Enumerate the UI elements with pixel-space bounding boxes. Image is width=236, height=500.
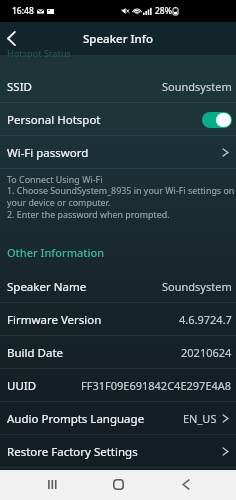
staticText: 16:48: [12, 5, 34, 17]
staticText: Other Information: [7, 245, 105, 260]
button[interactable]: Restore Factory Settings: [0, 435, 236, 468]
button[interactable]: Recent apps: [36, 469, 67, 499]
button[interactable]: Back: [0, 22, 23, 55]
staticText: Hotspot Status: [7, 47, 71, 59]
staticText: Personal Hotspot: [7, 112, 101, 128]
button[interactable]: Home: [103, 469, 134, 499]
staticText: Soundsystem: [162, 79, 232, 94]
staticText: Wi-Fi password: [7, 145, 89, 161]
staticText: To Connect Using Wi-Fi 1. Choose SoundSy…: [7, 173, 235, 221]
button[interactable]: Build Date: [0, 336, 236, 369]
staticText: Speaker Info: [83, 31, 153, 47]
staticText: EN_US: [183, 411, 217, 426]
button[interactable]: SSID: [0, 70, 236, 103]
button[interactable]: Speaker Name: [0, 270, 236, 303]
staticText: 4.6.9724.7: [179, 312, 232, 327]
staticText: SSID: [7, 79, 32, 95]
button[interactable]: Back: [170, 469, 201, 499]
staticText: 28%: [155, 5, 172, 17]
staticText: Soundsystem: [162, 279, 232, 294]
staticText: FF31F09E691842C4E297E4A8: [81, 378, 232, 393]
button[interactable]: Firmware Version: [0, 303, 236, 336]
staticText: Audio Prompts Language: [7, 411, 145, 427]
staticText: Build Date: [7, 345, 64, 361]
button[interactable]: Wi-Fi password: [0, 136, 236, 169]
staticText: UUID: [7, 378, 37, 394]
staticText: Speaker Name: [7, 279, 87, 295]
staticText: Firmware Version: [7, 312, 102, 328]
staticText: 20210624: [181, 345, 232, 360]
button[interactable]: UUID: [0, 369, 236, 402]
button[interactable]: Audio Prompts Language: [0, 402, 236, 435]
button[interactable]: Personal Hotspot: [0, 103, 236, 136]
staticText: Restore Factory Settings: [7, 444, 138, 460]
